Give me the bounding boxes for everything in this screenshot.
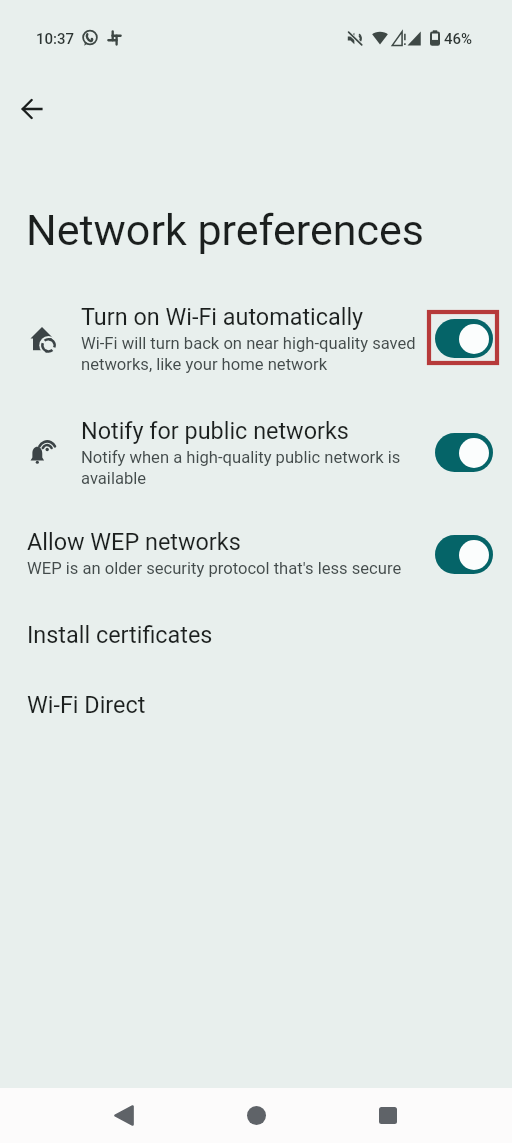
button[interactable]: Home — [228, 1088, 284, 1143]
staticText: Turn on Wi-Fi automatically — [81, 303, 364, 330]
button[interactable]: Toggle — [435, 433, 493, 472]
staticText: 46% — [444, 30, 473, 48]
button[interactable]: Notify for public networks — [0, 417, 512, 505]
staticText: Notify for public networks — [81, 417, 349, 444]
staticText: Notify when a high-quality public networ… — [81, 448, 401, 488]
button[interactable]: Toggle — [435, 319, 493, 358]
staticText: WEP is an older security protocol that's… — [27, 559, 402, 578]
staticText: Network preferences — [26, 205, 425, 255]
staticText: Wi-Fi will turn back on near high-qualit… — [81, 334, 416, 374]
staticText: Install certificates — [27, 621, 213, 648]
button[interactable]: Allow WEP networks — [0, 528, 512, 594]
button[interactable]: Recent apps — [360, 1088, 416, 1143]
button[interactable]: Install certificates — [0, 621, 512, 661]
button[interactable]: Turn on Wi-Fi automatically — [0, 303, 512, 391]
staticText: 10:37 — [36, 30, 75, 48]
button[interactable]: Back — [96, 1088, 152, 1143]
button[interactable]: Back — [11, 87, 54, 130]
button[interactable]: Toggle — [435, 535, 493, 574]
staticText: Allow WEP networks — [27, 528, 241, 555]
staticText: Wi-Fi Direct — [27, 691, 146, 718]
button[interactable]: Wi-Fi Direct — [0, 691, 512, 731]
